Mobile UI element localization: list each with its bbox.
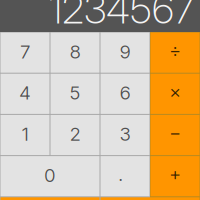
button[interactable]: 2 — [50, 115, 99, 155]
staticText: 5 — [69, 81, 80, 104]
staticText: 7 — [20, 40, 30, 63]
button[interactable]: Add — [150, 156, 199, 196]
button[interactable]: 0 — [0, 156, 99, 196]
button[interactable]: 1 — [0, 115, 49, 155]
staticText: 6 — [119, 81, 130, 104]
button[interactable]: Clear — [0, 197, 99, 200]
staticText: 8 — [69, 40, 80, 63]
button[interactable]: Divide — [150, 32, 199, 73]
staticText: 9 — [119, 40, 130, 63]
button[interactable]: 4 — [0, 74, 49, 114]
staticText: 1 — [21, 123, 28, 145]
button[interactable]: 9 — [100, 32, 149, 73]
staticText: × — [169, 80, 181, 103]
button[interactable]: 8 — [50, 32, 99, 73]
button[interactable]: 5 — [50, 74, 99, 114]
button[interactable]: Equals — [100, 197, 199, 200]
staticText: 2 — [69, 123, 80, 145]
button[interactable]: 6 — [100, 74, 149, 114]
staticText: 3 — [119, 123, 130, 145]
staticText: ÷ — [169, 39, 181, 61]
button[interactable]: Subtract — [150, 115, 199, 155]
button[interactable]: Decimal point — [100, 156, 149, 196]
staticText: 4 — [19, 81, 31, 104]
staticText: 0 — [44, 164, 56, 186]
button[interactable]: Multiply — [150, 74, 199, 114]
button[interactable]: 7 — [0, 32, 49, 73]
staticText: 1234567 — [49, 0, 195, 33]
staticText: + — [169, 162, 181, 185]
button[interactable]: 3 — [100, 115, 149, 155]
staticText: − — [169, 121, 181, 144]
staticText: . — [118, 163, 123, 185]
